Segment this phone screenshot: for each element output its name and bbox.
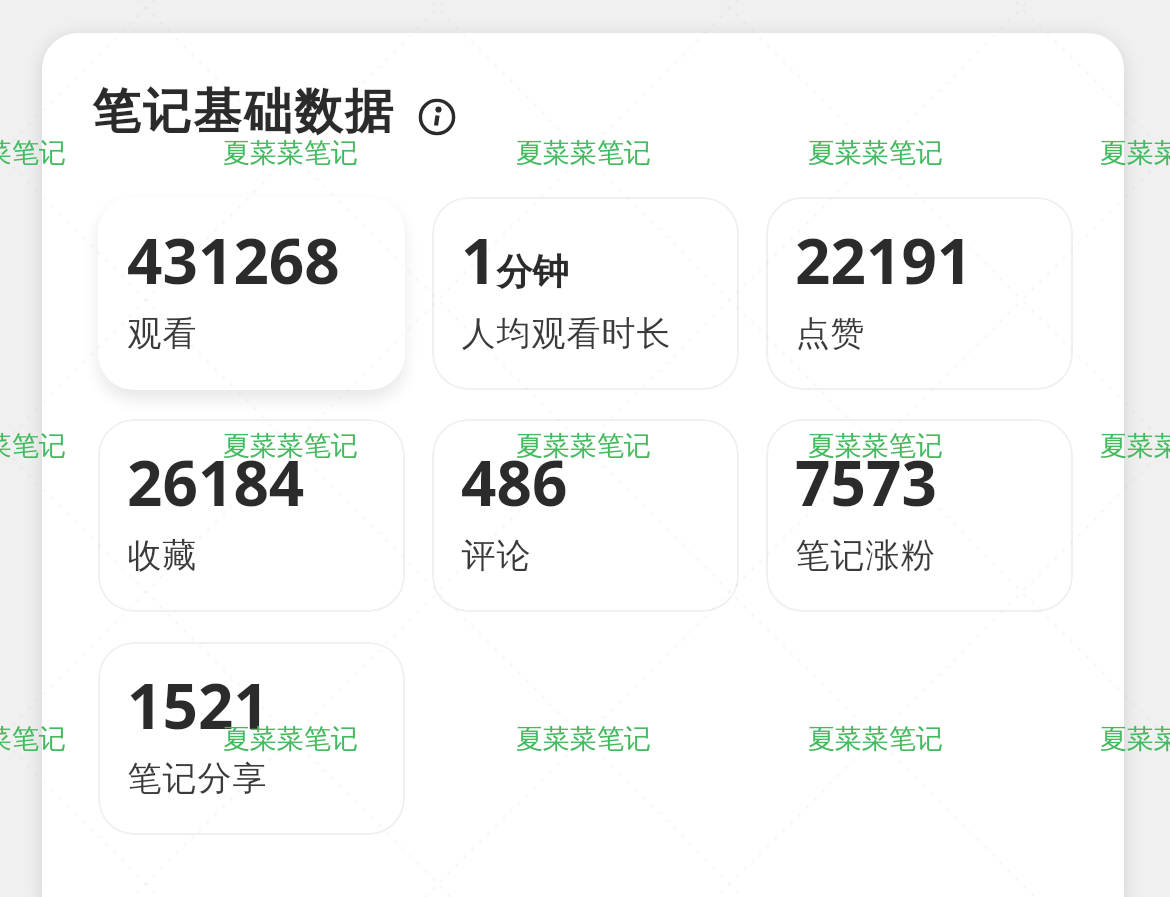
staticText: 夏菜菜笔记 — [1100, 429, 1170, 463]
staticText: 点赞 — [795, 312, 865, 355]
staticText: 26184 — [127, 440, 305, 524]
staticText: 夏菜菜笔记 — [808, 722, 943, 756]
staticText: 夏菜菜笔记 — [223, 136, 358, 170]
button[interactable]: 22191 — [766, 197, 1073, 390]
staticText: 486 — [461, 440, 568, 524]
staticText: 夏菜菜笔记 — [1100, 136, 1170, 170]
button[interactable]: 1521 — [98, 642, 405, 835]
button[interactable]: 486 — [432, 419, 739, 612]
staticText: 笔记基础数据 — [91, 82, 394, 142]
staticText: 评论 — [461, 534, 531, 577]
staticText: 1521 — [127, 663, 269, 747]
staticText: 夏菜菜笔记 — [516, 722, 651, 756]
staticText: 夏菜菜笔记 — [0, 722, 66, 756]
staticText: 7573 — [795, 440, 937, 524]
staticText: 夏菜菜笔记 — [0, 429, 66, 463]
staticText: 夏菜菜笔记 — [0, 136, 66, 170]
button[interactable] — [418, 98, 456, 136]
staticText: 431268 — [127, 218, 340, 302]
button[interactable]: 7573 — [766, 419, 1073, 612]
staticText: 笔记分享 — [127, 757, 267, 800]
staticText: 22191 — [795, 218, 973, 302]
staticText: 夏菜菜笔记 — [223, 722, 358, 756]
staticText: 夏菜菜笔记 — [516, 429, 651, 463]
staticText: 夏菜菜笔记 — [1100, 722, 1170, 756]
staticText: 夏菜菜笔记 — [223, 429, 358, 463]
button[interactable]: 1分钟 — [432, 197, 739, 390]
button[interactable]: 431268 — [98, 197, 405, 390]
staticText: 夏菜菜笔记 — [516, 136, 651, 170]
staticText: 人均观看时长 — [461, 312, 671, 355]
staticText: 观看 — [127, 312, 197, 355]
staticText: 笔记涨粉 — [795, 534, 935, 577]
staticText: 夏菜菜笔记 — [808, 136, 943, 170]
button[interactable]: 26184 — [98, 419, 405, 612]
staticText: 1分钟 — [461, 218, 569, 302]
staticText: 收藏 — [127, 534, 197, 577]
staticText: 夏菜菜笔记 — [808, 429, 943, 463]
